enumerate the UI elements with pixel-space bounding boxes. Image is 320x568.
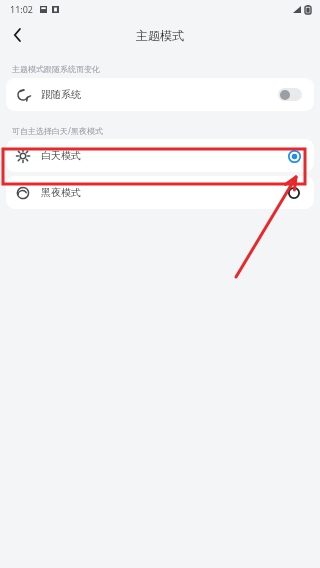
staticText: 主题模式 — [136, 28, 184, 43]
button[interactable]: Follow system toggle — [278, 88, 302, 101]
button[interactable]: 跟随系统 — [6, 78, 314, 111]
staticText: 黑夜模式 — [41, 186, 81, 199]
staticText: 白天模式 — [41, 149, 81, 162]
staticText: 11:02 — [10, 3, 34, 15]
button[interactable]: Night mode not selected — [286, 185, 302, 201]
button[interactable]: Day mode selected — [286, 148, 302, 164]
button[interactable]: 白天模式 — [6, 139, 314, 172]
button[interactable]: Back — [0, 18, 34, 52]
staticText: 跟随系统 — [41, 88, 81, 101]
staticText: 主题模式跟随系统而变化 — [12, 64, 100, 74]
button[interactable]: 黑夜模式 — [6, 176, 314, 209]
staticText: 可自主选择白天/黑夜模式 — [12, 125, 103, 136]
